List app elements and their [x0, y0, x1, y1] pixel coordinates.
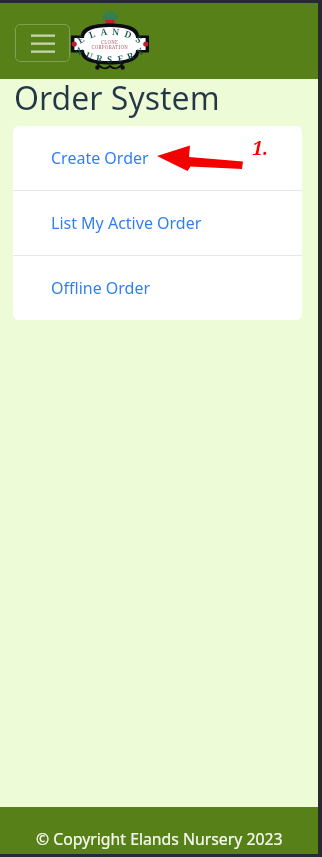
- button[interactable]: Open navigation menu: [15, 24, 70, 62]
- staticText: Create Order: [51, 147, 149, 169]
- staticText: 1.: [252, 135, 269, 161]
- staticText: List My Active Order: [51, 212, 202, 234]
- staticText: Order System: [14, 76, 220, 120]
- button[interactable]: Offline Order: [13, 256, 302, 320]
- staticText: Offline Order: [51, 277, 151, 299]
- button[interactable]: List My Active Order: [13, 191, 302, 255]
- button[interactable]: Create Order: [13, 126, 302, 190]
- staticText: © Copyright Elands Nursery 2023: [36, 828, 283, 850]
